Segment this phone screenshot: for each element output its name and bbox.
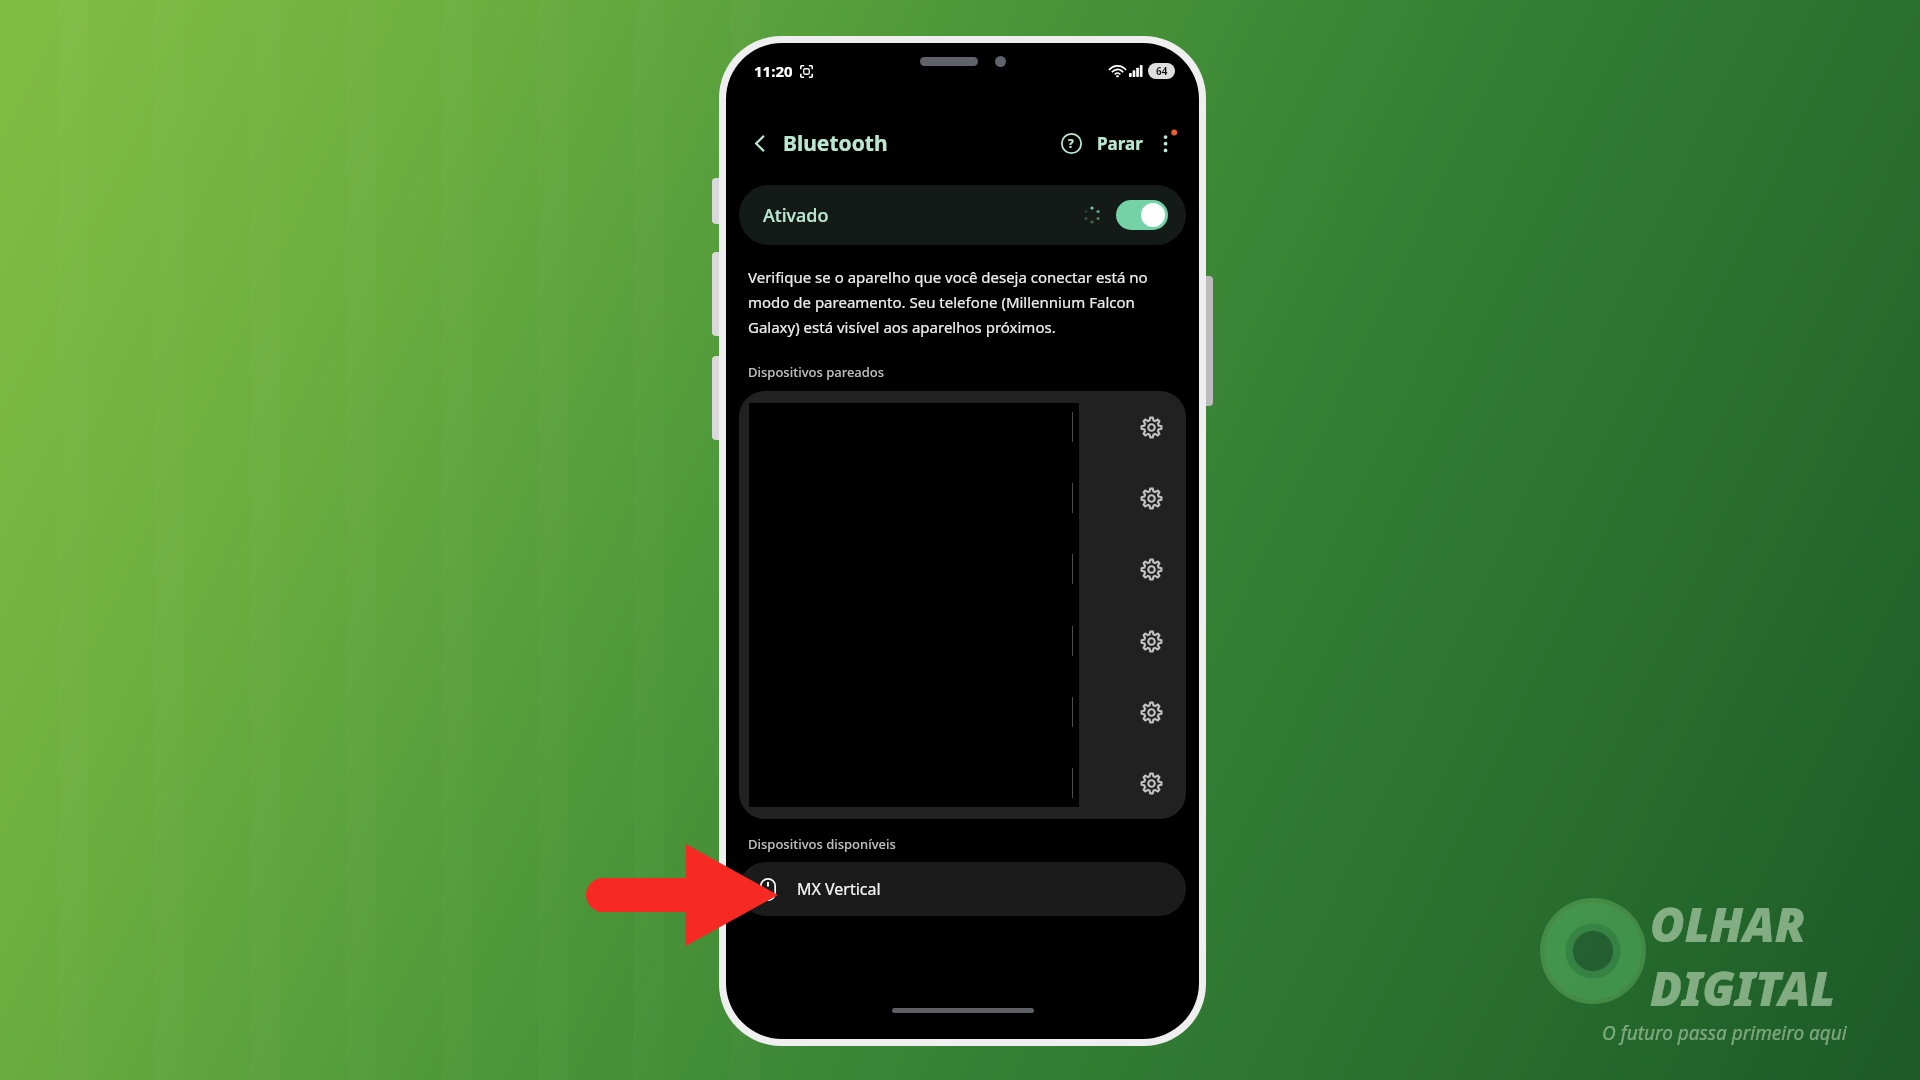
button[interactable]: MX Vertical <box>739 862 1186 916</box>
staticText: ? <box>1068 135 1074 151</box>
button[interactable]: Configurações do dispositivo <box>1072 392 1186 462</box>
button[interactable]: Configurações do dispositivo <box>1072 606 1186 676</box>
staticText: Dispositivos pareados <box>748 363 885 381</box>
staticText: Dispositivos disponíveis <box>748 835 896 853</box>
staticText: 11:20 <box>754 61 793 81</box>
button[interactable]: Alternar Bluetooth <box>1116 200 1168 230</box>
button[interactable]: Ajuda <box>1052 124 1090 162</box>
staticText: Bluetooth <box>783 129 888 158</box>
staticText: OLHAR <box>1650 892 1806 956</box>
button[interactable]: Configurações do dispositivo <box>1072 534 1186 604</box>
staticText: MX Vertical <box>797 878 881 900</box>
button[interactable]: Voltar <box>740 123 780 163</box>
button[interactable]: Ativado <box>739 185 1186 245</box>
button[interactable]: Mais opções <box>1149 125 1185 161</box>
staticText: 64 <box>1156 64 1168 78</box>
staticText: DIGITAL <box>1650 956 1836 1020</box>
button[interactable]: Parar <box>1091 126 1149 161</box>
staticText: Ativado <box>763 203 829 228</box>
staticText: Verifique se o aparelho que você deseja … <box>748 267 1177 337</box>
button[interactable]: Configurações do dispositivo <box>1072 463 1186 533</box>
button[interactable]: Configurações do dispositivo <box>1072 748 1186 818</box>
staticText: O futuro passa primeiro aqui <box>1602 1020 1847 1046</box>
staticText: Parar <box>1097 132 1143 155</box>
button[interactable]: Configurações do dispositivo <box>1072 677 1186 747</box>
